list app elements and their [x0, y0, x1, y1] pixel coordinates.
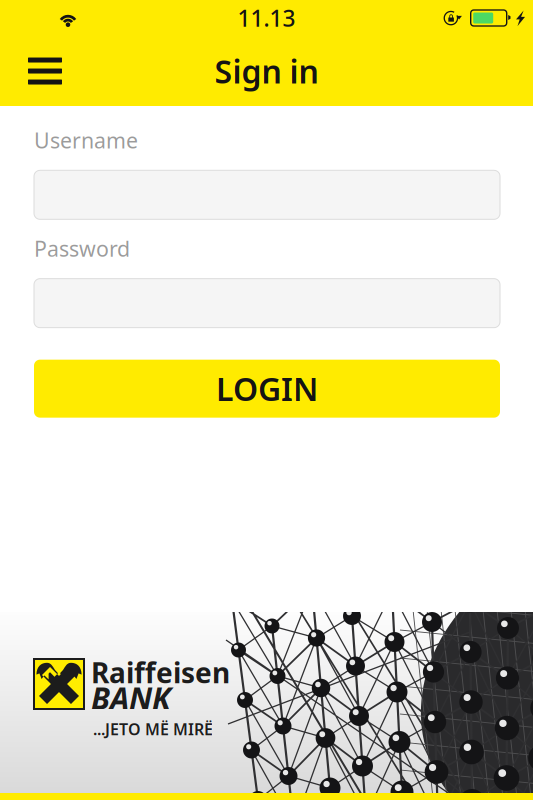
staticText: ...JETO MË MIRË [93, 718, 213, 740]
staticText: 11.13 [237, 3, 295, 33]
button[interactable]: LOGIN [34, 360, 500, 418]
staticText: Username [34, 126, 138, 154]
staticText: LOGIN [216, 367, 318, 410]
button[interactable]: Menu [0, 36, 90, 106]
staticText: Raiffeisen [91, 654, 230, 691]
button[interactable]: Password field [34, 279, 500, 328]
staticText: BANK [91, 677, 171, 718]
staticText: Sign in [214, 50, 318, 92]
staticText: Password [34, 234, 130, 263]
